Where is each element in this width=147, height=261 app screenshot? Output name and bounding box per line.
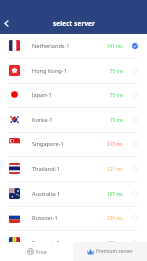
button[interactable]: Back — [1, 18, 12, 29]
staticText: Premium server — [96, 248, 133, 255]
staticText: 130 ms — [107, 240, 123, 246]
button[interactable]: Japan-1 — [0, 83, 147, 108]
button[interactable]: Thailand-1 — [0, 157, 147, 182]
staticText: select server — [53, 19, 95, 27]
button[interactable]: Singapore-1 — [0, 132, 147, 157]
button[interactable]: Australia-1 — [0, 182, 147, 207]
staticText: Japan-1 — [32, 91, 52, 99]
staticText: 221 ms — [107, 166, 123, 172]
staticText: Free — [36, 248, 47, 255]
staticText: 313 ms — [107, 141, 123, 147]
staticText: 254 ms — [107, 215, 123, 221]
staticText: Thailand-1 — [32, 165, 60, 173]
button[interactable]: Free — [0, 242, 73, 261]
staticText: Romania-1 — [32, 239, 61, 247]
staticText: Russion-1 — [32, 214, 58, 222]
button[interactable]: Hong Kong-1 — [0, 59, 147, 84]
button[interactable]: Korea-1 — [0, 108, 147, 133]
staticText: 73 ms — [110, 92, 123, 98]
button[interactable]: Premium server — [73, 242, 147, 261]
staticText: Singapore-1 — [32, 140, 64, 148]
button[interactable]: Netherlands-1 — [0, 34, 147, 59]
staticText: Hong Kong-1 — [32, 67, 67, 75]
staticText: 187 ms — [107, 191, 123, 197]
staticText: 73 ms — [110, 117, 123, 123]
staticText: Australia-1 — [32, 190, 61, 198]
button[interactable]: Russion-1 — [0, 206, 147, 231]
staticText: Korea-1 — [32, 116, 53, 124]
staticText: 73 ms — [110, 68, 123, 74]
button[interactable]: Romania-1 — [0, 231, 147, 256]
staticText: 141 ms — [107, 43, 123, 49]
staticText: Netherlands-1 — [32, 42, 70, 50]
